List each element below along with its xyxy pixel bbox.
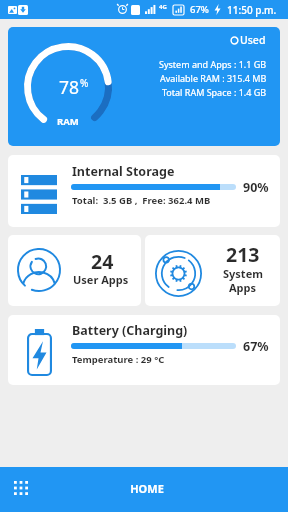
- staticText: HOME: [130, 481, 164, 496]
- staticText: Temperature : 29 °C: [72, 353, 165, 366]
- staticText: 67%: [190, 3, 209, 16]
- staticText: 67%: [243, 338, 269, 355]
- staticText: User Apps: [73, 272, 129, 287]
- button[interactable]: HOME: [106, 471, 188, 506]
- button[interactable]: Apps: [2, 470, 42, 510]
- staticText: Used: [240, 33, 266, 47]
- button[interactable]: Battery (Charging): [8, 315, 280, 385]
- staticText: Apps: [229, 280, 257, 295]
- staticText: Total RAM Space : 1.4 GB: [162, 86, 267, 98]
- staticText: System: [223, 266, 263, 281]
- staticText: System and Apps : 1.1 GB: [159, 58, 267, 70]
- button[interactable]: Internal Storage: [8, 155, 280, 227]
- staticText: Total: 3.5 GB , Free: 362.4 MB: [72, 194, 211, 207]
- staticText: 4G: [159, 3, 167, 11]
- staticText: 78: [59, 75, 80, 99]
- staticText: 213: [226, 241, 260, 268]
- staticText: Available RAM : 315.4 MB: [160, 72, 267, 84]
- staticText: Internal Storage: [72, 163, 175, 180]
- staticText: RAM: [57, 115, 79, 128]
- staticText: %: [80, 76, 89, 90]
- button[interactable]: 213: [145, 235, 280, 306]
- button[interactable]: 24: [8, 235, 141, 306]
- button[interactable]: 78: [8, 27, 280, 146]
- staticText: 90%: [243, 179, 269, 196]
- staticText: Battery (Charging): [72, 322, 188, 339]
- staticText: 11:50 p.m.: [227, 3, 277, 17]
- staticText: 24: [91, 248, 114, 275]
